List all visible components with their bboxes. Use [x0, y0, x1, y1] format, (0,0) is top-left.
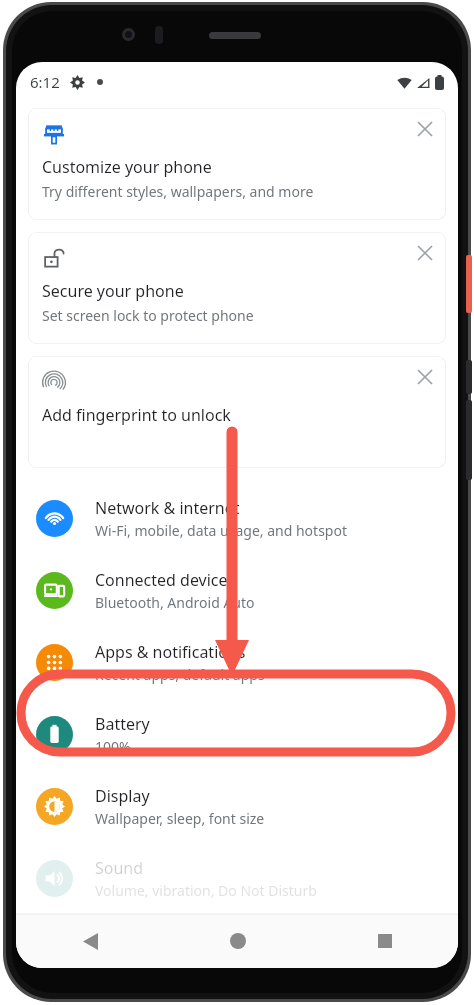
button[interactable]: Network & internet: [16, 482, 458, 554]
staticText: Try different styles, wallpapers, and mo…: [42, 182, 314, 201]
staticText: Recent apps, default apps: [95, 665, 265, 684]
staticText: Customize your phone: [42, 156, 212, 178]
staticText: Wallpaper, sleep, font size: [95, 809, 265, 828]
button[interactable]: Display: [16, 770, 458, 842]
staticText: Set screen lock to protect phone: [42, 306, 254, 325]
button[interactable]: Recent apps: [311, 914, 458, 968]
button[interactable]: Battery: [16, 698, 458, 770]
staticText: Add fingerprint to unlock: [42, 404, 231, 426]
button[interactable]: Add fingerprint to unlock: [28, 356, 446, 468]
staticText: Network & internet: [95, 497, 240, 519]
button[interactable]: Connected devices: [16, 554, 458, 626]
button[interactable]: Dismiss: [410, 114, 440, 144]
button[interactable]: Dismiss: [410, 238, 440, 268]
button[interactable]: Dismiss: [410, 362, 440, 392]
staticText: Bluetooth, Android Auto: [95, 593, 255, 612]
staticText: Wi-Fi, mobile, data usage, and hotspot: [95, 521, 347, 540]
button[interactable]: Sound: [16, 842, 458, 914]
staticText: Apps & notifications: [95, 641, 246, 663]
staticText: Sound: [95, 857, 144, 879]
staticText: Secure your phone: [42, 280, 184, 302]
staticText: Connected devices: [95, 569, 236, 591]
staticText: 6:12: [30, 72, 60, 92]
staticText: 100%: [95, 737, 131, 756]
button[interactable]: Customize your phone: [28, 108, 446, 220]
button[interactable]: Home: [164, 914, 311, 968]
staticText: Battery: [95, 713, 150, 735]
button[interactable]: Back: [16, 914, 164, 968]
button[interactable]: Secure your phone: [28, 232, 446, 344]
button[interactable]: Apps & notifications: [16, 626, 458, 698]
staticText: Display: [95, 785, 150, 807]
staticText: Volume, vibration, Do Not Disturb: [95, 881, 317, 900]
